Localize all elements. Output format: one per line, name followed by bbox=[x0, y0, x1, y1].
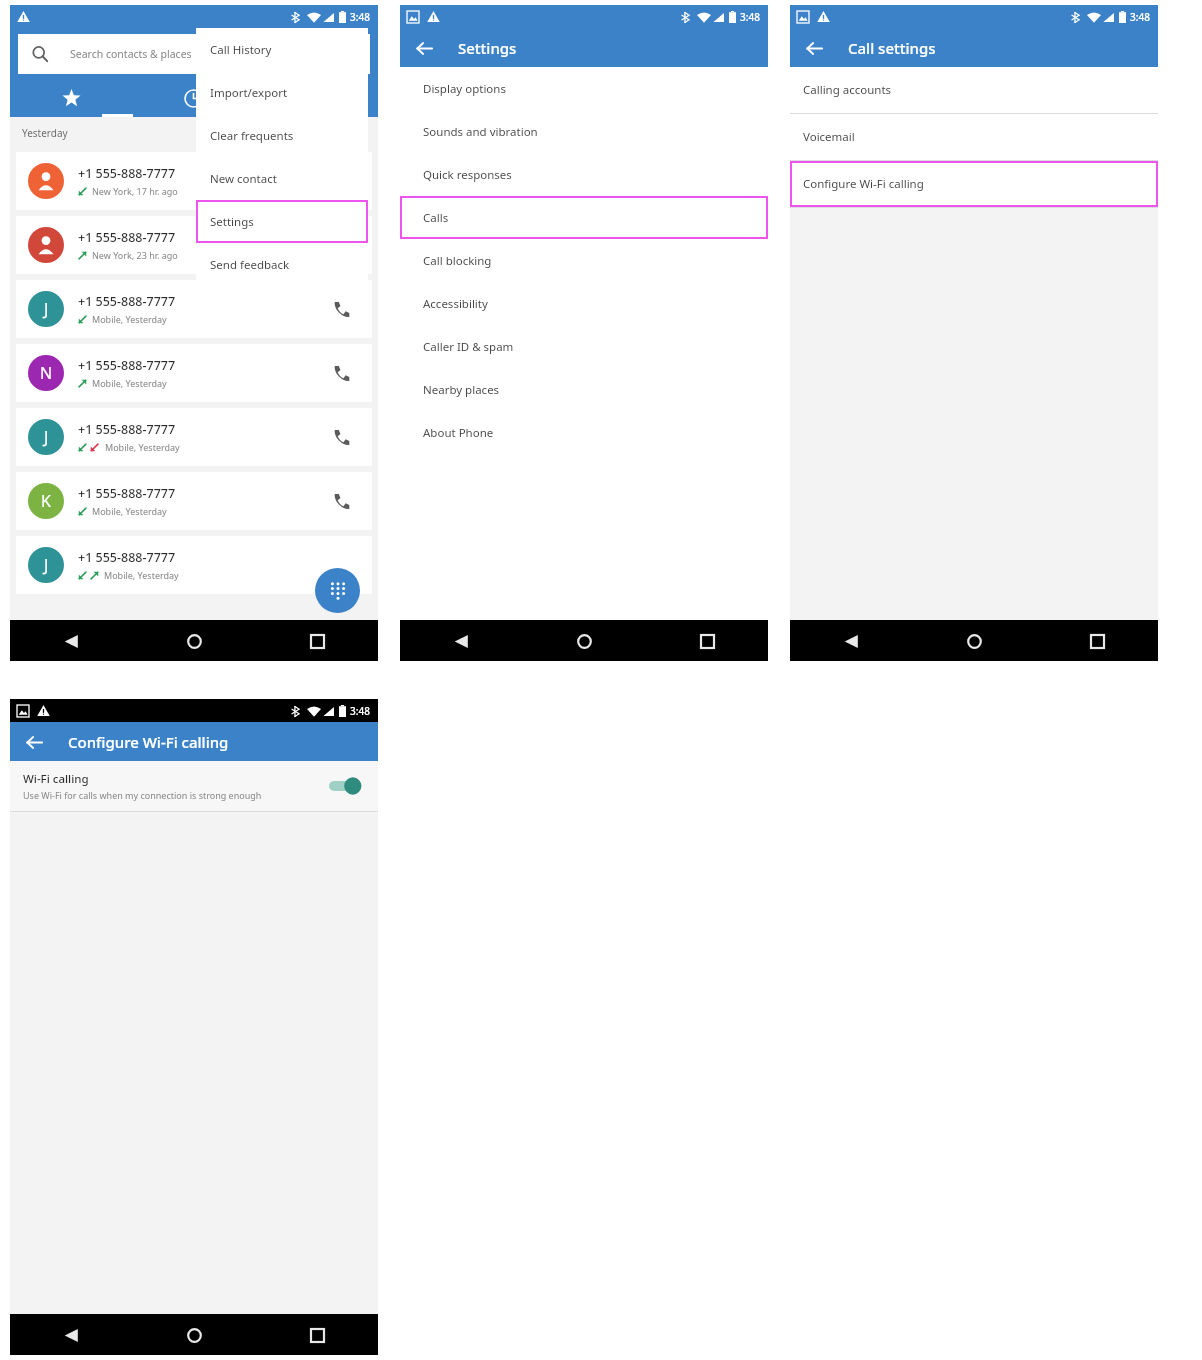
button[interactable]: J bbox=[16, 408, 372, 466]
button[interactable]: Back bbox=[53, 623, 89, 659]
staticText: N bbox=[40, 362, 53, 384]
staticText: Yesterday bbox=[22, 126, 68, 140]
staticText: Accessibility bbox=[423, 296, 488, 312]
staticText: Wi-Fi calling bbox=[23, 771, 89, 787]
staticText: +1 555-888-7777 bbox=[78, 421, 176, 438]
button[interactable]: Call blocking bbox=[400, 239, 768, 282]
staticText: Clear frequents bbox=[210, 128, 294, 144]
staticText: J bbox=[44, 426, 49, 448]
button[interactable]: New contact bbox=[196, 157, 368, 200]
staticText: Configure Wi-Fi calling bbox=[68, 732, 229, 752]
button[interactable]: Import/export bbox=[196, 71, 368, 114]
button[interactable]: Recents bbox=[299, 1317, 335, 1353]
staticText: +1 555-888-7777 bbox=[78, 293, 176, 310]
button[interactable]: N bbox=[16, 344, 372, 402]
button[interactable]: About Phone bbox=[400, 411, 768, 454]
button[interactable]: Navigate up bbox=[20, 728, 48, 756]
button[interactable]: Call back bbox=[324, 420, 358, 454]
button[interactable]: Back bbox=[833, 623, 869, 659]
staticText: Import/export bbox=[210, 85, 288, 101]
button[interactable]: Accessibility bbox=[400, 282, 768, 325]
staticText: Display options bbox=[423, 81, 506, 97]
staticText: New York, 23 hr. ago bbox=[92, 249, 178, 261]
button[interactable]: Calls bbox=[400, 196, 768, 239]
staticText: Call History bbox=[210, 42, 272, 58]
button[interactable]: +1 555-888-7777 bbox=[16, 216, 372, 274]
staticText: +1 555-888-7777 bbox=[78, 485, 176, 502]
button[interactable]: +1 555-888-7777 bbox=[16, 152, 372, 210]
staticText: Caller ID & spam bbox=[423, 339, 514, 355]
button[interactable]: Calling accounts bbox=[790, 67, 1158, 113]
staticText: About Phone bbox=[423, 425, 494, 441]
button[interactable]: Configure Wi-Fi calling bbox=[790, 161, 1158, 207]
button[interactable]: Call back bbox=[324, 292, 358, 326]
button[interactable]: Send feedback bbox=[196, 243, 368, 286]
staticText: Calls bbox=[423, 210, 449, 226]
staticText: Mobile, Yesterday bbox=[104, 569, 179, 581]
button[interactable]: Recents bbox=[689, 623, 725, 659]
button[interactable]: Clear frequents bbox=[196, 114, 368, 157]
staticText: +1 555-888-7777 bbox=[78, 229, 176, 246]
button[interactable]: Voicemail bbox=[790, 114, 1158, 160]
staticText: 3:48 bbox=[350, 10, 370, 24]
staticText: New contact bbox=[210, 171, 277, 187]
button[interactable]: Nearby places bbox=[400, 368, 768, 411]
button[interactable]: Quick responses bbox=[400, 153, 768, 196]
staticText: Mobile, Yesterday bbox=[92, 313, 167, 325]
button[interactable]: Recents bbox=[299, 623, 335, 659]
button[interactable]: Back bbox=[443, 623, 479, 659]
staticText: New York, 17 hr. ago bbox=[92, 185, 178, 197]
staticText: Calling accounts bbox=[803, 82, 892, 98]
staticText: K bbox=[41, 490, 51, 512]
button[interactable]: K bbox=[16, 472, 372, 530]
staticText: Quick responses bbox=[423, 167, 512, 183]
staticText: Call settings bbox=[848, 38, 936, 58]
button[interactable]: Navigate up bbox=[800, 34, 828, 62]
staticText: 3:48 bbox=[350, 704, 370, 718]
button[interactable] bbox=[255, 80, 378, 117]
staticText: Voicemail bbox=[803, 129, 855, 145]
button[interactable]: Recents bbox=[1079, 623, 1115, 659]
button[interactable]: Call back bbox=[324, 356, 358, 390]
staticText: Sounds and vibration bbox=[423, 124, 538, 140]
staticText: Configure Wi-Fi calling bbox=[803, 176, 924, 192]
button[interactable]: Call back bbox=[324, 484, 358, 518]
staticText: J bbox=[44, 554, 49, 576]
staticText: Send feedback bbox=[210, 257, 290, 273]
button[interactable]: J bbox=[16, 536, 372, 594]
button[interactable]: Settings bbox=[196, 200, 368, 243]
button[interactable]: Back bbox=[53, 1317, 89, 1353]
staticText: Mobile, Yesterday bbox=[105, 441, 180, 453]
staticText: Settings bbox=[458, 38, 517, 58]
staticText: Use Wi-Fi for calls when my connection i… bbox=[23, 789, 262, 801]
staticText: Search contacts & places bbox=[70, 47, 192, 61]
staticText: +1 555-888-7777 bbox=[78, 549, 176, 566]
button[interactable]: Call history bbox=[132, 80, 255, 117]
button[interactable]: Caller ID & spam bbox=[400, 325, 768, 368]
button[interactable]: J bbox=[16, 280, 372, 338]
staticText: Call blocking bbox=[423, 253, 492, 269]
button[interactable]: Home bbox=[176, 1317, 212, 1353]
staticText: +1 555-888-7777 bbox=[78, 165, 176, 182]
staticText: Mobile, Yesterday bbox=[92, 505, 167, 517]
button[interactable]: Home bbox=[956, 623, 992, 659]
button[interactable]: Home bbox=[566, 623, 602, 659]
button[interactable]: Sounds and vibration bbox=[400, 110, 768, 153]
staticText: 3:48 bbox=[1130, 10, 1150, 24]
button[interactable]: Call History bbox=[196, 28, 368, 71]
staticText: 3:48 bbox=[740, 10, 760, 24]
button[interactable]: Navigate up bbox=[410, 34, 438, 62]
staticText: +1 555-888-7777 bbox=[78, 357, 176, 374]
staticText: Settings bbox=[210, 214, 254, 230]
button[interactable]: Search contacts & places bbox=[18, 34, 370, 74]
button[interactable]: Dialpad bbox=[315, 568, 360, 613]
button[interactable]: Wi-Fi calling bbox=[10, 761, 378, 811]
staticText: J bbox=[44, 298, 49, 320]
button[interactable]: Home bbox=[176, 623, 212, 659]
staticText: Mobile, Yesterday bbox=[92, 377, 167, 389]
staticText: Nearby places bbox=[423, 382, 500, 398]
button[interactable]: Display options bbox=[400, 67, 768, 110]
button[interactable]: Favorites bbox=[10, 80, 132, 117]
